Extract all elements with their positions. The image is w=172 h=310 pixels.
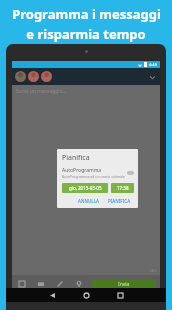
staticText: AutoProgramma ad un orario ottimale — [62, 174, 126, 179]
staticText: AutoProgramma — [62, 167, 102, 174]
staticText: e risparmia tempo — [26, 25, 146, 43]
button[interactable]: gio, 2015-03-05 — [62, 183, 108, 193]
button[interactable]: ANNULLA — [75, 197, 103, 205]
button[interactable]: Expand recipients — [147, 72, 157, 82]
staticText: Pianifica — [62, 153, 90, 163]
button[interactable]: Attach image — [16, 278, 28, 290]
staticText: ANNULLA — [78, 198, 100, 204]
button[interactable]: Invia — [91, 279, 156, 290]
button[interactable]: AutoProgramma — [62, 167, 134, 179]
button[interactable]: Home — [75, 288, 97, 302]
button[interactable]: Camera — [35, 278, 47, 290]
staticText: 140 — [149, 268, 156, 273]
staticText: gio, 2015-03-05 — [69, 185, 102, 191]
button[interactable]: Draw — [54, 278, 66, 290]
button[interactable]: Contact — [15, 71, 26, 82]
button[interactable]: PIANIFICA — [105, 197, 134, 205]
staticText: PIANIFICA — [108, 198, 131, 204]
button[interactable]: Recents — [109, 288, 131, 302]
button[interactable]: Location — [73, 278, 85, 290]
button[interactable]: Scrivi un messaggio... — [12, 85, 160, 275]
button[interactable]: Back — [41, 288, 63, 302]
staticText: 17:38 — [117, 185, 129, 191]
staticText: Scrivi un messaggio... — [16, 88, 67, 95]
staticText: Invia — [118, 281, 130, 288]
staticText: 4:46 — [149, 62, 157, 67]
button[interactable]: 17:38 — [111, 183, 134, 193]
button[interactable]: Contact — [28, 71, 39, 82]
staticText: Programma i messaggi — [12, 5, 161, 23]
button[interactable]: Contact — [41, 71, 52, 82]
